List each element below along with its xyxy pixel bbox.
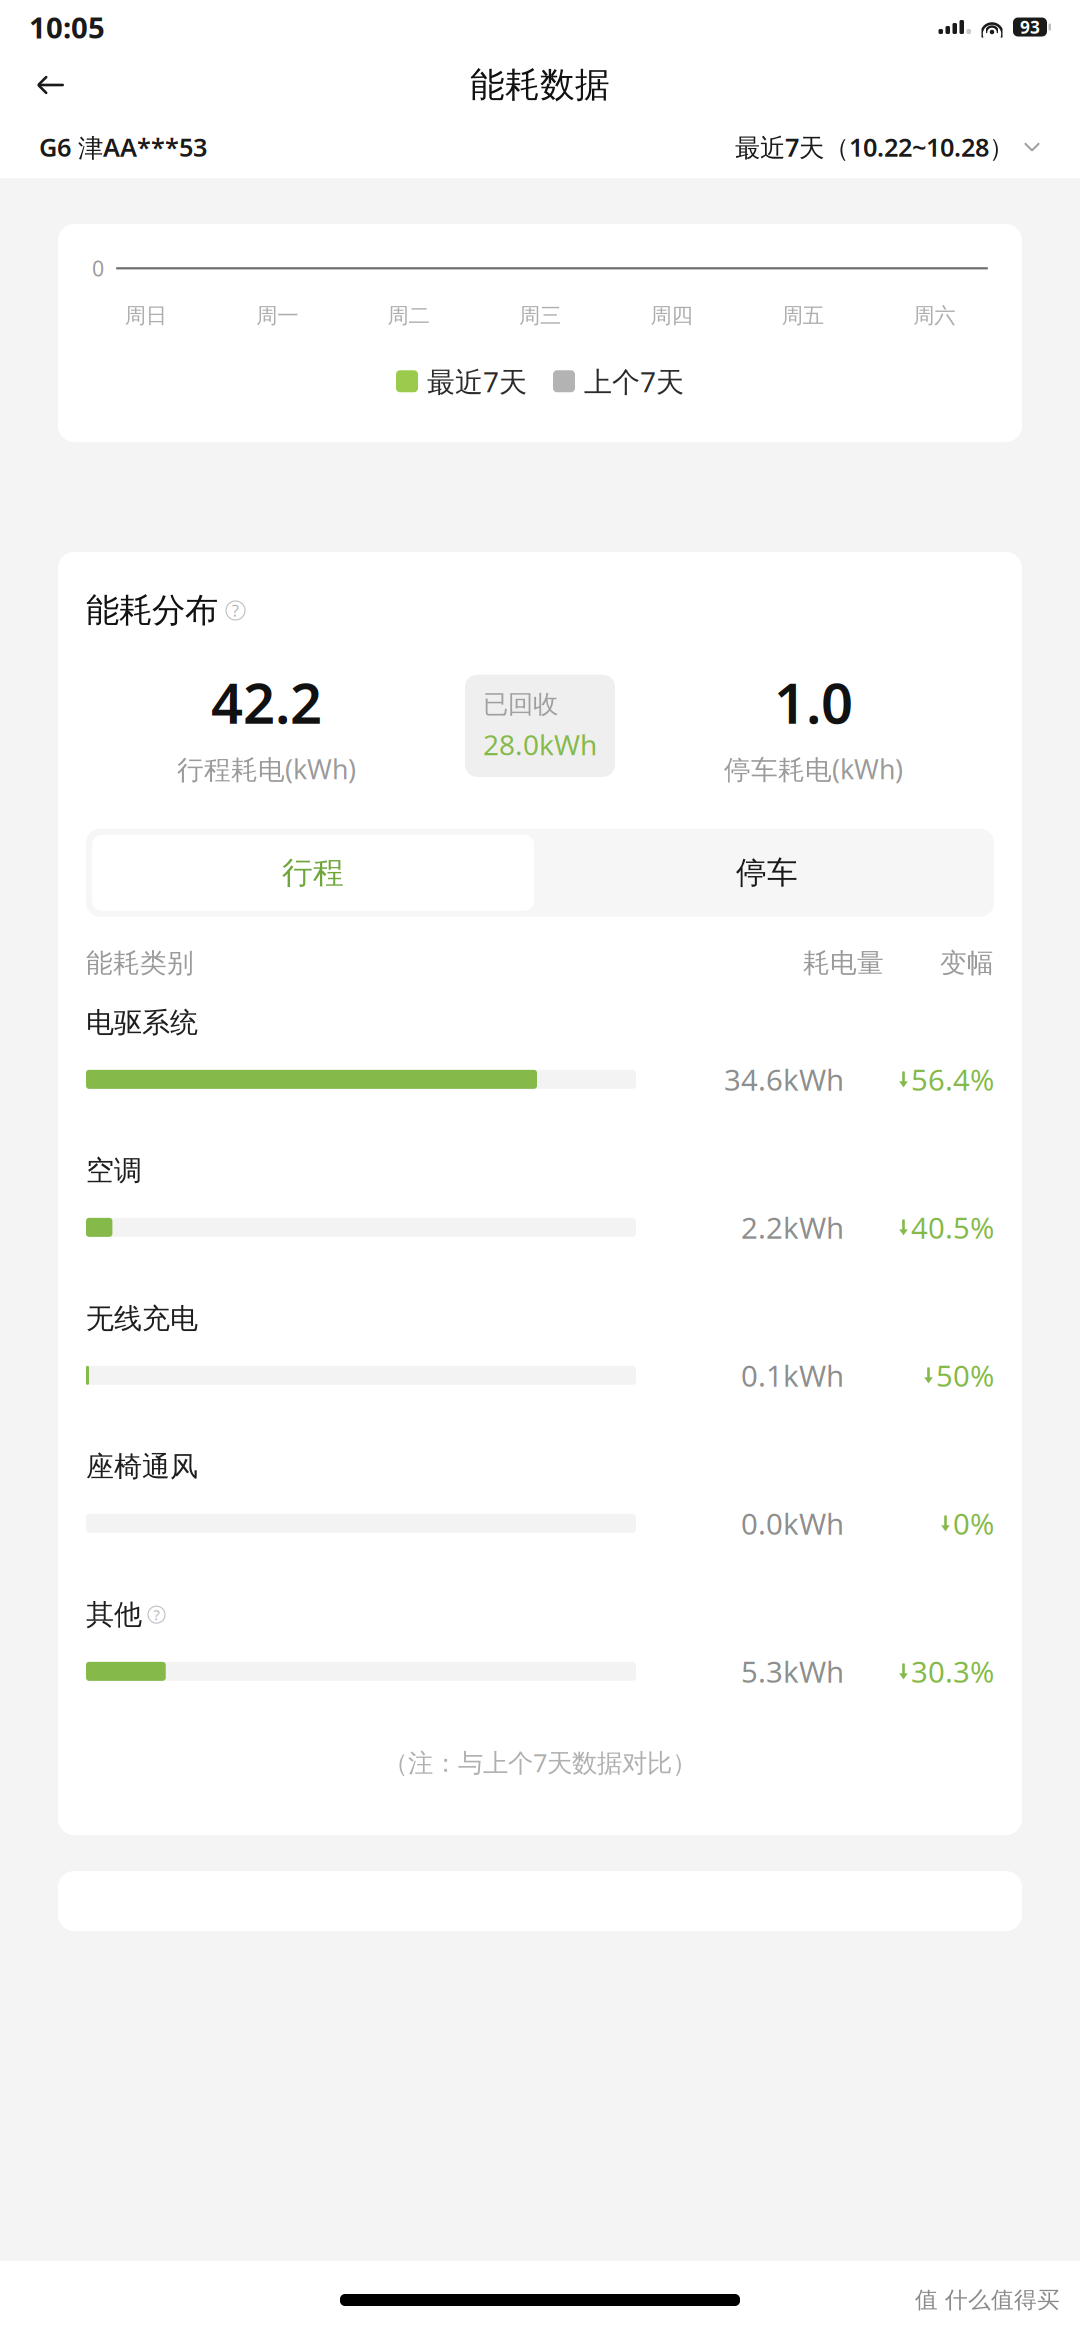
staticText: 能耗分布 <box>86 590 218 631</box>
button[interactable]: 最近7天（10.22~10.28） <box>735 124 1041 170</box>
staticText: 无线充电 <box>86 1301 198 1336</box>
staticText: 0% <box>953 1504 994 1543</box>
staticText: G6 津AA***53 <box>39 130 207 164</box>
staticText: 93 <box>1020 15 1040 38</box>
staticText: 停车 <box>736 854 798 892</box>
staticText: 周日 <box>125 302 167 329</box>
staticText: （注：与上个7天数据对比） <box>383 1745 697 1779</box>
staticText: 40.5% <box>911 1208 994 1247</box>
staticText: 行程耗电(kWh) <box>177 751 356 787</box>
staticText: 周五 <box>782 302 824 329</box>
staticText: 周二 <box>388 302 430 329</box>
button[interactable]: 返回 <box>24 63 78 107</box>
staticText: 0.0kWh <box>741 1504 844 1543</box>
staticText: 其他 <box>86 1597 142 1632</box>
staticText: 最近7天 <box>427 363 527 400</box>
button[interactable]: 能耗分布说明 <box>226 601 245 620</box>
staticText: 10:05 <box>29 7 105 46</box>
staticText: 能耗类别 <box>86 947 194 979</box>
staticText: 电驱系统 <box>86 1005 198 1040</box>
staticText: 0 <box>92 254 104 282</box>
staticText: ? <box>232 600 239 621</box>
button[interactable]: 行程 <box>86 829 540 917</box>
staticText: 30.3% <box>911 1652 994 1691</box>
staticText: 座椅通风 <box>86 1449 198 1484</box>
staticText: 周三 <box>519 302 561 329</box>
staticText: 周四 <box>650 302 692 329</box>
staticText: 能耗数据 <box>470 64 610 106</box>
staticText: 停车耗电(kWh) <box>724 751 903 787</box>
staticText: 周一 <box>256 302 298 329</box>
staticText: 5.3kWh <box>741 1652 844 1691</box>
staticText: 0.1kWh <box>741 1356 844 1395</box>
staticText: 28.0kWh <box>483 726 597 763</box>
button[interactable]: 停车 <box>540 829 994 917</box>
staticText: 56.4% <box>911 1060 994 1099</box>
staticText: 空调 <box>86 1153 142 1188</box>
staticText: 值 什么值得买 <box>915 2286 1060 2314</box>
staticText: 2.2kWh <box>741 1208 844 1247</box>
staticText: 42.2 <box>211 665 322 739</box>
staticText: 34.6kWh <box>724 1060 844 1099</box>
staticText: 行程 <box>282 854 344 892</box>
staticText: 变幅 <box>940 947 994 979</box>
button[interactable]: G6 津AA***53 <box>39 124 207 170</box>
staticText: 周六 <box>913 302 955 329</box>
staticText: 耗电量 <box>803 947 884 979</box>
staticText: 1.0 <box>774 665 853 739</box>
staticText: 50% <box>936 1356 994 1395</box>
staticText: 上个7天 <box>584 363 684 400</box>
staticText: ? <box>153 1605 159 1624</box>
staticText: 已回收 <box>483 689 558 720</box>
staticText: 最近7天（10.22~10.28） <box>735 130 1014 164</box>
